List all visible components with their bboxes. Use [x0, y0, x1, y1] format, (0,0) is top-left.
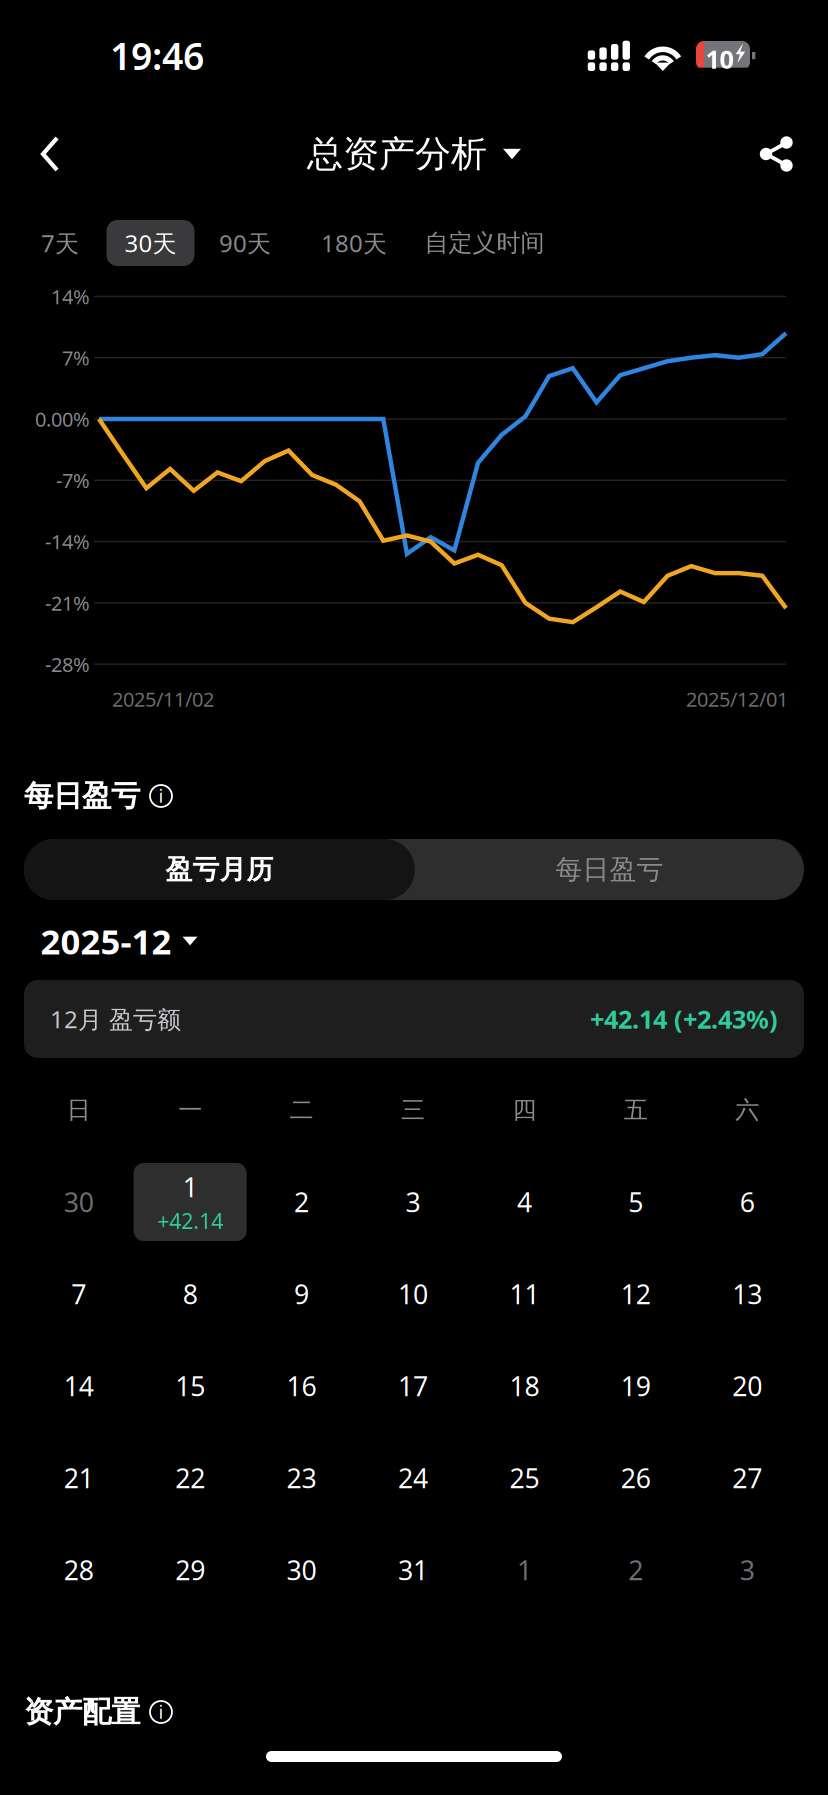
button[interactable]: 30 — [23, 1163, 134, 1241]
button[interactable]: 20 — [692, 1347, 803, 1425]
button[interactable]: 自定义时间 — [421, 220, 548, 266]
button[interactable]: 30 — [246, 1531, 357, 1609]
button[interactable]: 24 — [357, 1439, 469, 1517]
staticText: 14 — [64, 1368, 94, 1404]
staticText: 14% — [51, 283, 90, 310]
button[interactable]: 3 — [692, 1531, 803, 1609]
staticText: 29 — [175, 1552, 205, 1588]
staticText: 1 — [183, 1169, 198, 1204]
staticText: i — [158, 1699, 163, 1724]
staticText: 2025-12 — [40, 918, 171, 964]
button[interactable]: 12 — [580, 1255, 691, 1333]
staticText: 4 — [517, 1184, 532, 1220]
staticText: i — [158, 783, 163, 808]
button[interactable]: 1 — [469, 1531, 580, 1609]
staticText: 三 — [401, 1095, 425, 1125]
button[interactable]: 7 — [23, 1255, 134, 1333]
staticText: 11 — [509, 1276, 539, 1312]
button[interactable]: 13 — [692, 1255, 803, 1333]
staticText: 12月 盈亏额 — [50, 1003, 181, 1035]
button[interactable]: 3 — [357, 1163, 469, 1241]
staticText: 90天 — [219, 227, 271, 259]
staticText: 日 — [67, 1095, 91, 1125]
button[interactable]: 10 — [357, 1255, 469, 1333]
staticText: 五 — [624, 1095, 648, 1125]
button[interactable]: Share — [738, 118, 814, 190]
button[interactable]: 2025-12 — [24, 919, 214, 963]
button[interactable]: 17 — [357, 1347, 469, 1425]
button[interactable]: 28 — [23, 1531, 134, 1609]
staticText: 23 — [287, 1460, 317, 1496]
staticText: 13 — [732, 1276, 762, 1312]
button[interactable]: 14 — [23, 1347, 134, 1425]
staticText: 2 — [628, 1552, 643, 1588]
staticText: 四 — [512, 1095, 536, 1125]
button[interactable]: 5 — [580, 1163, 691, 1241]
button[interactable]: 90天 — [203, 220, 287, 266]
button[interactable]: 31 — [357, 1531, 469, 1609]
button[interactable]: 6 — [692, 1163, 803, 1241]
button[interactable]: 23 — [246, 1439, 357, 1517]
staticText: 2025/12/01 — [686, 686, 788, 712]
staticText: 10 — [398, 1276, 428, 1312]
staticText: 每日盈亏 — [555, 853, 663, 886]
staticText: 总资产分析 — [307, 132, 487, 176]
staticText: 31 — [398, 1552, 428, 1588]
staticText: +42.14 — [157, 1206, 223, 1235]
staticText: +42.14 (+2.43%) — [590, 1002, 778, 1036]
button[interactable]: 29 — [134, 1531, 246, 1609]
staticText: -14% — [45, 528, 90, 555]
staticText: 30 — [64, 1184, 94, 1220]
button[interactable]: 1 — [134, 1163, 246, 1241]
button[interactable]: 4 — [469, 1163, 580, 1241]
staticText: 8 — [183, 1276, 198, 1312]
button[interactable]: 16 — [246, 1347, 357, 1425]
staticText: 26 — [621, 1460, 651, 1496]
staticText: 12 — [621, 1276, 651, 1312]
staticText: 18 — [509, 1368, 539, 1404]
staticText: 22 — [175, 1460, 205, 1496]
button[interactable]: 18 — [469, 1347, 580, 1425]
staticText: 30天 — [124, 227, 176, 259]
button[interactable]: 180天 — [287, 220, 421, 266]
staticText: -28% — [45, 651, 90, 677]
staticText: 19:46 — [110, 31, 204, 80]
button[interactable]: 盈亏月历 — [24, 839, 415, 900]
staticText: 9 — [294, 1276, 309, 1312]
staticText: 6 — [740, 1184, 755, 1220]
button[interactable]: 26 — [580, 1439, 691, 1517]
staticText: 7% — [62, 344, 90, 371]
button[interactable]: 8 — [134, 1255, 246, 1333]
staticText: 盈亏月历 — [165, 853, 273, 886]
button[interactable]: 2 — [580, 1531, 691, 1609]
staticText: 27 — [732, 1460, 762, 1496]
button[interactable]: 15 — [134, 1347, 246, 1425]
staticText: 24 — [398, 1460, 428, 1496]
button[interactable]: 19 — [580, 1347, 691, 1425]
staticText: 15 — [175, 1368, 205, 1404]
button[interactable]: 22 — [134, 1439, 246, 1517]
staticText: 资产配置 — [24, 1694, 140, 1730]
staticText: 25 — [509, 1460, 539, 1496]
button[interactable]: Back — [12, 118, 88, 190]
button[interactable]: 9 — [246, 1255, 357, 1333]
staticText: 1 — [517, 1552, 532, 1588]
button[interactable]: 21 — [23, 1439, 134, 1517]
staticText: 每日盈亏 — [24, 778, 140, 814]
button[interactable]: 25 — [469, 1439, 580, 1517]
button[interactable]: 7天 — [22, 220, 98, 266]
staticText: -21% — [45, 590, 90, 616]
staticText: 21 — [64, 1460, 94, 1496]
button[interactable]: 30天 — [98, 220, 203, 266]
staticText: 28 — [64, 1552, 94, 1588]
staticText: 10 — [705, 42, 733, 76]
staticText: 2 — [294, 1184, 309, 1220]
staticText: 一 — [178, 1095, 202, 1125]
button[interactable]: 11 — [469, 1255, 580, 1333]
button[interactable]: 每日盈亏 — [415, 839, 804, 900]
staticText: 180天 — [321, 227, 387, 259]
button[interactable]: 27 — [692, 1439, 803, 1517]
button[interactable]: 2 — [246, 1163, 357, 1241]
button[interactable]: 总资产分析 — [0, 118, 828, 190]
staticText: 7 — [71, 1276, 86, 1312]
